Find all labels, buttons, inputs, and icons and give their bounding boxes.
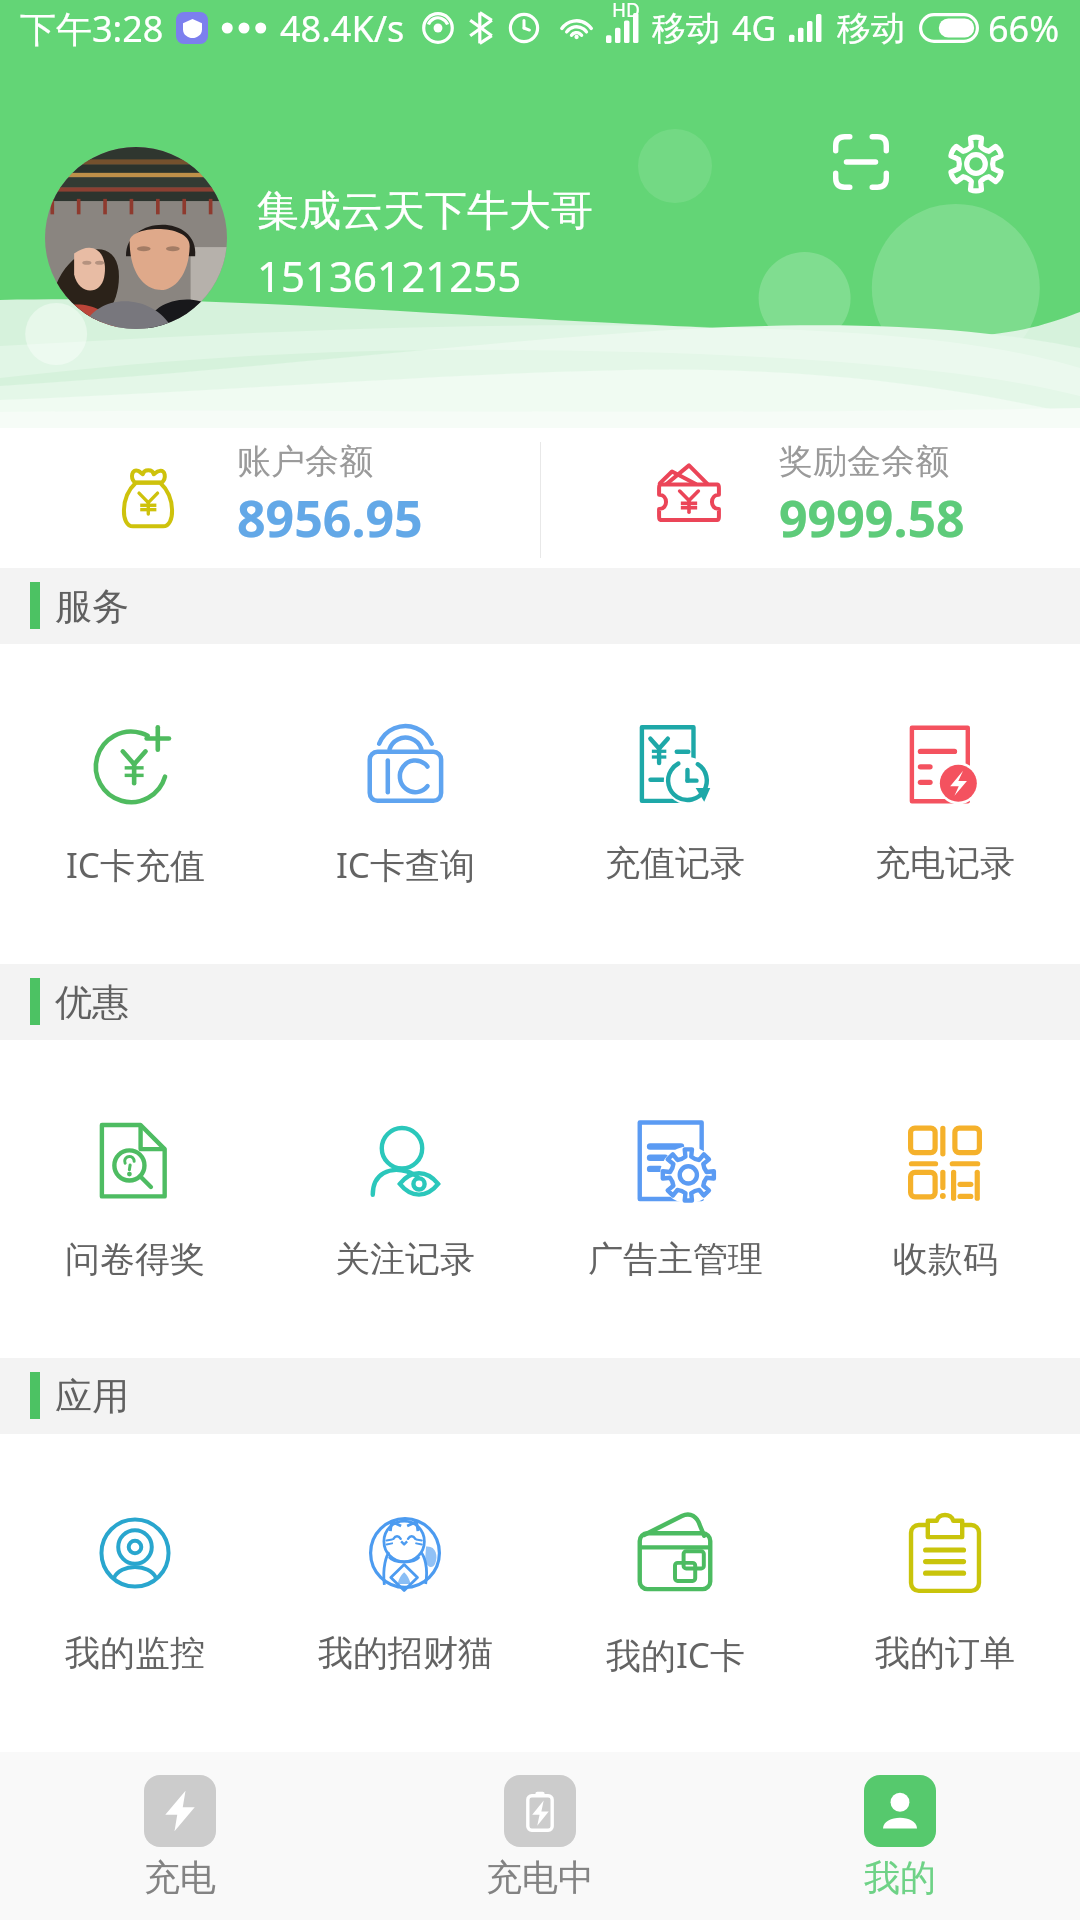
staticText: 48.4K/s [280,4,405,53]
staticText: 15136121255 [257,247,522,304]
button[interactable]: Settings [936,124,1016,204]
staticText: 我的订单 [875,1631,1015,1675]
staticText: 充值记录 [605,841,745,885]
staticText: 我的监控 [65,1631,205,1675]
staticText: 移动 [652,7,720,50]
staticText: IC卡充值 [66,841,205,889]
button[interactable]: 收款码 [810,1040,1080,1358]
staticText: 关注记录 [335,1237,475,1281]
button[interactable]: 充值记录 [540,644,810,964]
button[interactable]: 我的招财猫 [270,1434,540,1752]
staticText: 我的IC卡 [606,1631,745,1679]
staticText: 优惠 [55,979,129,1026]
button[interactable]: 我的订单 [810,1434,1080,1752]
button[interactable]: IC卡查询 [270,644,540,964]
button[interactable]: Scan code [823,124,899,200]
staticText: 我的 [864,1855,936,1900]
staticText: 我的招财猫 [318,1631,493,1675]
staticText: 4G [732,5,777,51]
staticText: 移动 [837,7,905,50]
staticText: 账户余额 [237,440,373,483]
staticText: 9999.58 [779,484,965,552]
button[interactable]: 广告主管理 [540,1040,810,1358]
button[interactable]: 集成云天下牛大哥 [257,185,593,304]
button[interactable]: 我的IC卡 [540,1434,810,1752]
button[interactable] [45,147,227,329]
button[interactable]: 我的监控 [0,1434,270,1752]
button[interactable]: 我的 [720,1752,1080,1920]
staticText: 收款码 [893,1237,998,1281]
button[interactable]: IC卡充值 [0,644,270,964]
button[interactable]: 充电中 [360,1752,720,1920]
button[interactable]: 充电记录 [810,644,1080,964]
button[interactable]: 充电 [0,1752,360,1920]
staticText: 应用 [55,1373,129,1420]
staticText: 集成云天下牛大哥 [257,185,593,238]
staticText: 充电 [144,1855,216,1900]
button[interactable]: 奖励金余额 [779,440,965,552]
staticText: 充电记录 [875,841,1015,885]
staticText: 8956.95 [237,484,423,552]
staticText: 充电中 [486,1855,594,1900]
staticText: 问卷得奖 [65,1237,205,1281]
staticText: 66% [988,4,1060,53]
staticText: 奖励金余额 [779,440,949,483]
staticText: 服务 [55,583,129,630]
staticText: HD [612,0,640,23]
staticText: 广告主管理 [588,1237,763,1281]
button[interactable]: 关注记录 [270,1040,540,1358]
staticText: IC卡查询 [336,841,475,889]
staticText: 下午3:28 [20,4,164,53]
button[interactable]: 问卷得奖 [0,1040,270,1358]
button[interactable]: 账户余额 [237,440,423,552]
